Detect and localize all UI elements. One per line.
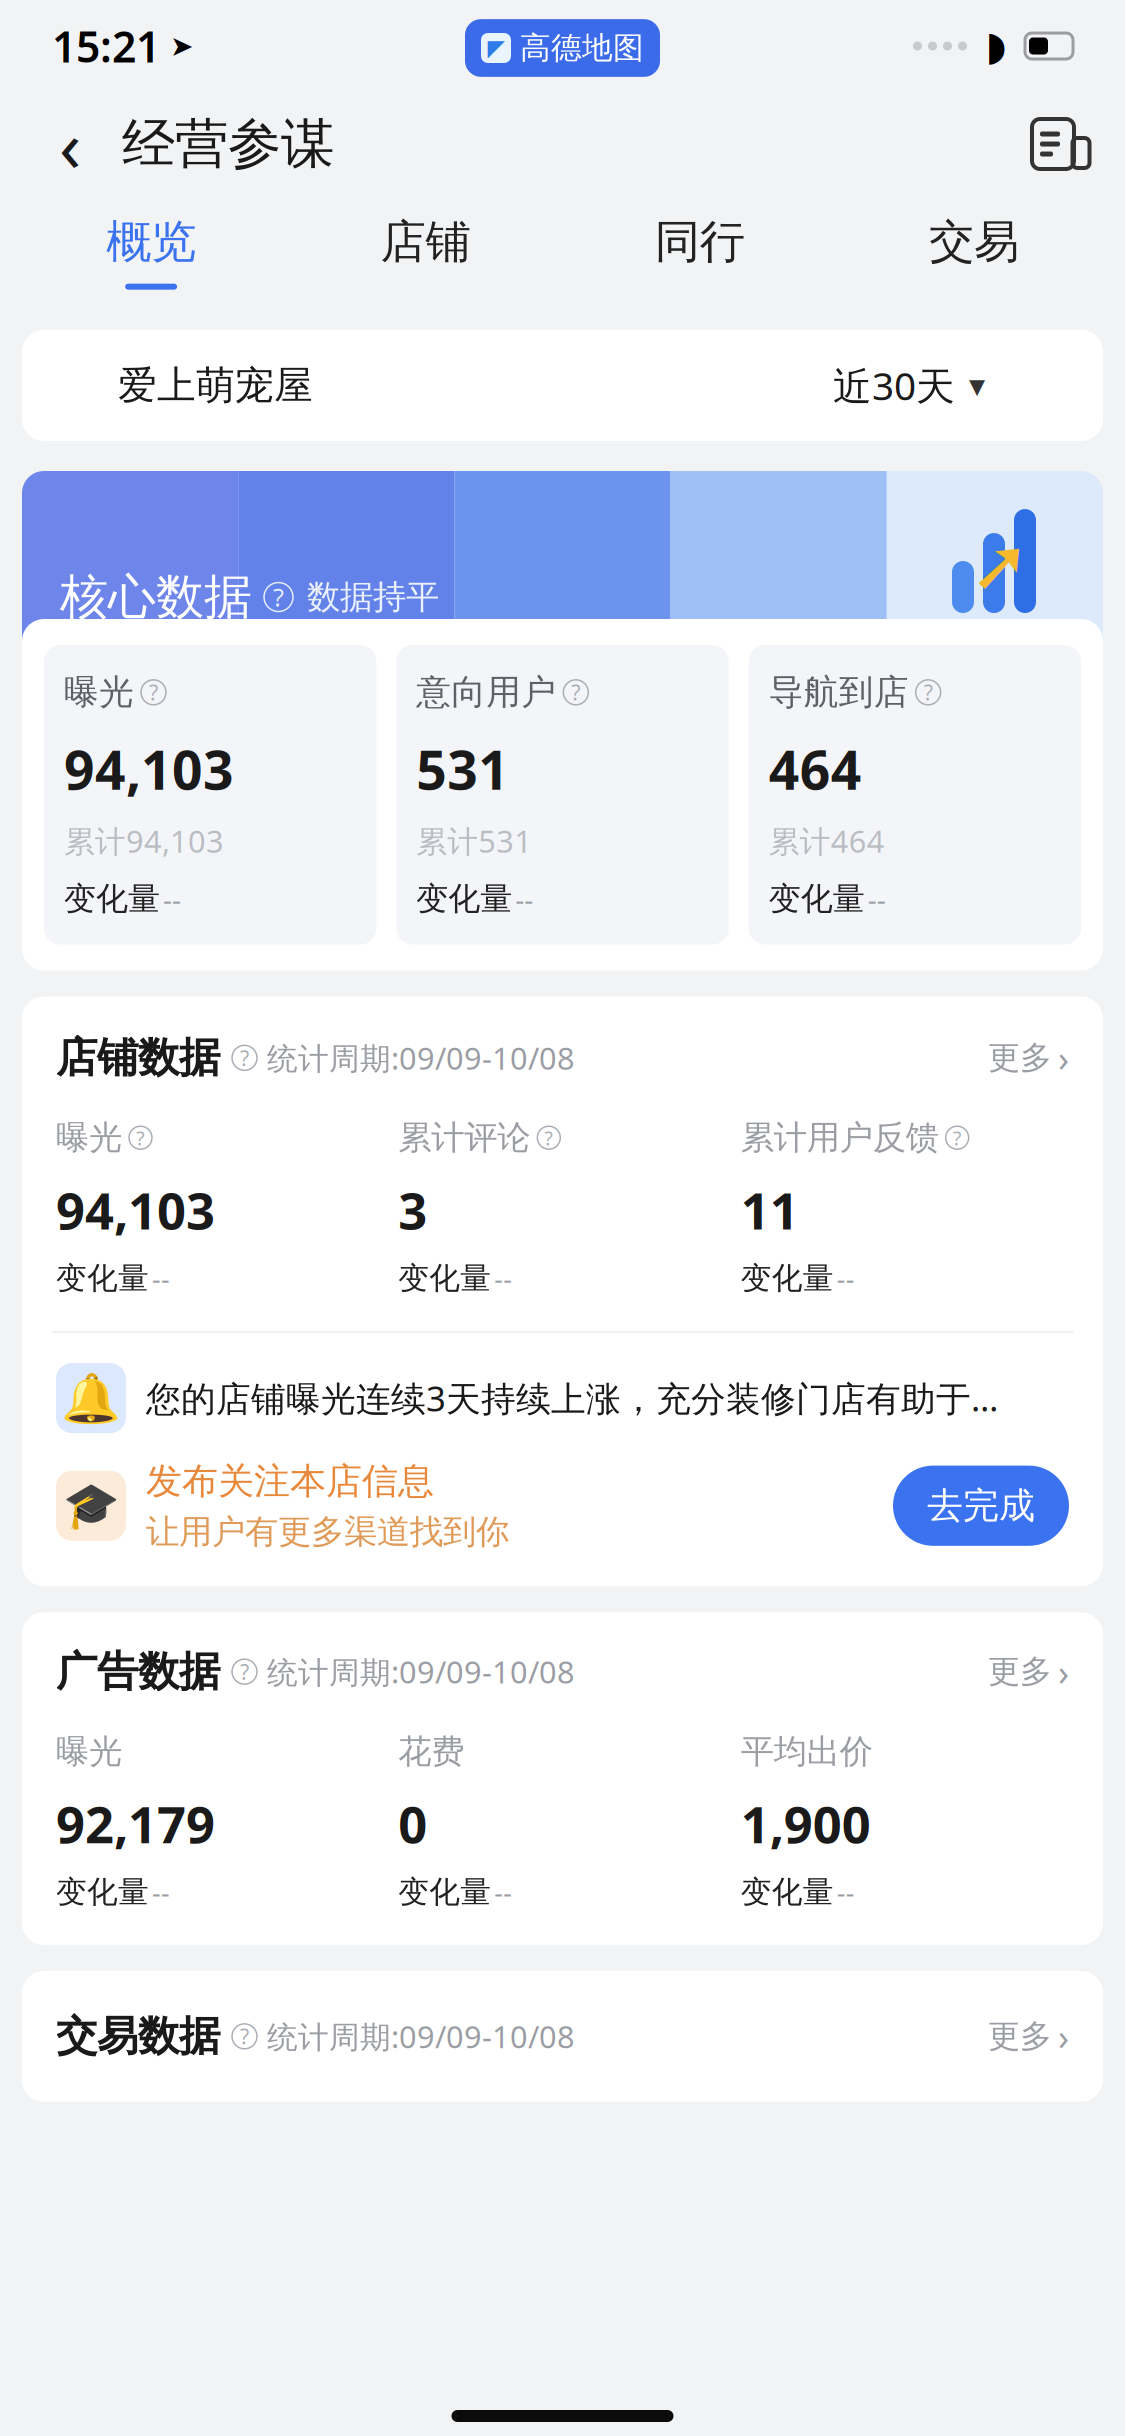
staticText: 高德地图 bbox=[520, 29, 644, 67]
staticText: ‹ bbox=[59, 96, 81, 192]
staticText: › bbox=[1058, 1648, 1069, 1696]
staticText: 交易数据 bbox=[56, 2011, 220, 2062]
staticText: -- bbox=[515, 880, 533, 917]
staticText: ◗ bbox=[985, 23, 1006, 69]
button[interactable]: 🎓 bbox=[56, 1459, 1069, 1552]
staticText: 累计用户反馈 bbox=[741, 1117, 939, 1158]
button[interactable]: 交易 bbox=[837, 196, 1111, 308]
staticText: 1,900 bbox=[741, 1790, 871, 1857]
staticText: 店铺数据 bbox=[56, 1032, 220, 1083]
staticText: 464 bbox=[769, 734, 862, 804]
staticText: 导航到店 bbox=[769, 671, 909, 714]
staticText: 94,103 bbox=[64, 734, 234, 804]
staticText: ➤ bbox=[170, 30, 193, 62]
staticText: 94,103 bbox=[56, 1176, 215, 1243]
staticText: 变化量 bbox=[56, 1259, 149, 1297]
staticText: 广告数据 bbox=[56, 1646, 220, 1697]
staticText: 变化量 bbox=[64, 879, 160, 918]
button[interactable]: 爱上萌宠屋 bbox=[0, 330, 1125, 441]
staticText: 交易 bbox=[929, 214, 1019, 270]
staticText: 曝光 bbox=[56, 1731, 122, 1772]
staticText: 累计评论 bbox=[398, 1117, 530, 1158]
staticText: 变化量 bbox=[398, 1873, 491, 1911]
staticText: 去完成 bbox=[927, 1484, 1035, 1528]
staticText: 统计周期:09/09-10/08 bbox=[267, 2016, 575, 2057]
button[interactable]: 更多 bbox=[988, 1648, 1069, 1696]
staticText: ◤ bbox=[487, 35, 504, 61]
staticText: › bbox=[1058, 2012, 1069, 2060]
staticText: -- bbox=[152, 1261, 170, 1296]
staticText: 531 bbox=[416, 734, 509, 804]
staticText: -- bbox=[837, 1261, 855, 1296]
staticText: 爱上萌宠屋 bbox=[118, 362, 313, 409]
staticText: 统计周期:09/09-10/08 bbox=[267, 1037, 575, 1078]
staticText: 近30天 bbox=[833, 360, 955, 411]
staticText: 核心数据 bbox=[60, 568, 252, 627]
button[interactable]: 返回 bbox=[34, 108, 106, 180]
staticText: 意向用户 bbox=[416, 671, 556, 714]
staticText: ? bbox=[571, 678, 580, 706]
staticText: ? bbox=[544, 1124, 553, 1151]
staticText: 统计周期:09/09-10/08 bbox=[267, 1651, 575, 1692]
staticText: 变化量 bbox=[769, 879, 865, 918]
staticText: 累计94,103 bbox=[64, 820, 224, 861]
staticText: ? bbox=[953, 1124, 962, 1151]
staticText: 🎓 bbox=[63, 1480, 119, 1532]
button[interactable]: 🔔 bbox=[56, 1363, 1069, 1433]
button[interactable]: 更多 bbox=[988, 2012, 1069, 2060]
staticText: › bbox=[1058, 1034, 1069, 1082]
staticText: 平均出价 bbox=[741, 1731, 873, 1772]
staticText: 15:21 bbox=[52, 18, 160, 74]
button[interactable]: 同行 bbox=[562, 196, 837, 308]
staticText: ? bbox=[273, 580, 284, 614]
staticText: 您的店铺曝光连续3天持续上涨，充分装修门店有助于… bbox=[146, 1375, 998, 1421]
staticText: 更多 bbox=[988, 1038, 1052, 1077]
staticText: -- bbox=[868, 880, 886, 917]
staticText: ? bbox=[240, 1657, 249, 1686]
staticText: 累计464 bbox=[769, 820, 885, 861]
staticText: ➚ bbox=[970, 524, 1030, 606]
staticText: 更多 bbox=[988, 1652, 1052, 1691]
staticText: 店铺 bbox=[380, 214, 470, 270]
button[interactable]: 报告 bbox=[1015, 108, 1091, 180]
staticText: -- bbox=[163, 880, 181, 917]
staticText: 11 bbox=[741, 1176, 799, 1243]
staticText: 3 bbox=[398, 1176, 427, 1243]
staticText: 数据持平 bbox=[307, 577, 439, 617]
staticText: ? bbox=[136, 1124, 145, 1151]
staticText: ? bbox=[924, 678, 933, 706]
staticText: 变化量 bbox=[56, 1873, 149, 1911]
staticText: 发布关注本店信息 bbox=[146, 1459, 434, 1503]
button[interactable]: 店铺 bbox=[288, 196, 562, 308]
button[interactable]: 概览 bbox=[14, 196, 288, 308]
staticText: ? bbox=[240, 1044, 249, 1072]
staticText: ? bbox=[149, 678, 158, 706]
staticText: -- bbox=[494, 1261, 512, 1296]
staticText: 变化量 bbox=[416, 879, 512, 918]
staticText: -- bbox=[494, 1874, 512, 1910]
staticText: 曝光 bbox=[56, 1117, 122, 1158]
staticText: 92,179 bbox=[56, 1790, 215, 1857]
staticText: ▾ bbox=[969, 367, 985, 403]
button[interactable]: 更多 bbox=[988, 1034, 1069, 1082]
staticText: 累计531 bbox=[416, 820, 532, 861]
staticText: 同行 bbox=[655, 214, 745, 270]
staticText: 概览 bbox=[106, 214, 196, 270]
staticText: 花费 bbox=[398, 1731, 464, 1772]
staticText: 更多 bbox=[988, 2017, 1052, 2056]
staticText: -- bbox=[837, 1874, 855, 1910]
staticText: 曝光 bbox=[64, 671, 134, 714]
staticText: 0 bbox=[398, 1790, 427, 1857]
staticText: ? bbox=[240, 2022, 249, 2050]
staticText: 经营参谋 bbox=[122, 111, 334, 177]
staticText: 变化量 bbox=[741, 1873, 834, 1911]
staticText: 变化量 bbox=[398, 1259, 491, 1297]
staticText: -- bbox=[152, 1874, 170, 1910]
staticText: 让用户有更多渠道找到你 bbox=[146, 1511, 509, 1552]
staticText: 变化量 bbox=[741, 1259, 834, 1297]
staticText: 🔔 bbox=[61, 1371, 121, 1425]
